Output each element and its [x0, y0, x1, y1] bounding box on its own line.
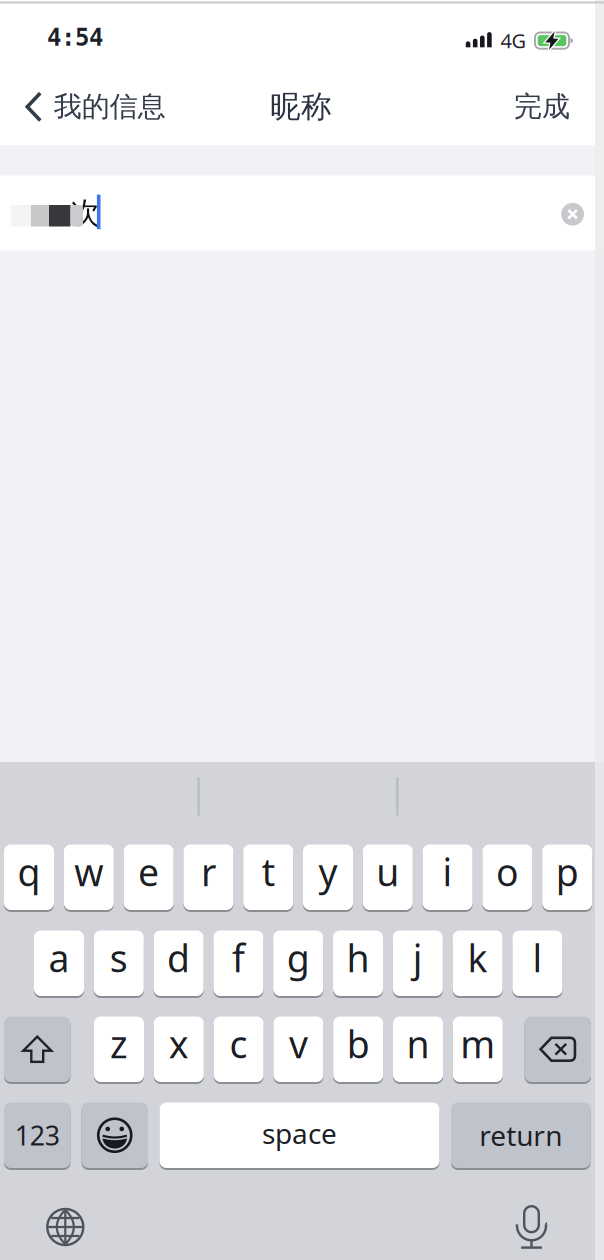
staticText: j	[413, 933, 423, 983]
button[interactable]: p	[542, 843, 592, 911]
staticText: return	[479, 1117, 562, 1154]
staticText: h	[346, 933, 369, 983]
button[interactable]: e	[124, 843, 174, 911]
staticText: o	[496, 847, 519, 897]
button[interactable]: d	[154, 929, 204, 997]
staticText: k	[468, 933, 488, 983]
button[interactable]: o	[482, 843, 532, 911]
staticText: 我的信息	[54, 90, 166, 124]
button[interactable]: Clear text	[561, 203, 584, 226]
button[interactable]: t	[243, 843, 293, 911]
button[interactable]: c	[214, 1015, 264, 1083]
staticText: l	[532, 933, 542, 983]
staticText: z	[110, 1019, 128, 1069]
staticText: n	[406, 1019, 429, 1069]
button[interactable]: q	[4, 843, 54, 911]
staticText: 完成	[514, 90, 570, 124]
button[interactable]: Shift	[4, 1015, 70, 1083]
staticText: q	[17, 847, 40, 897]
staticText: e	[138, 847, 159, 897]
button[interactable]: s	[94, 929, 144, 997]
staticText: a	[48, 933, 69, 983]
button[interactable]: m	[453, 1015, 503, 1083]
staticText: d	[167, 933, 190, 983]
button[interactable]: w	[64, 843, 114, 911]
button[interactable]: Dictation	[509, 1198, 553, 1254]
button[interactable]: z	[94, 1015, 144, 1083]
button[interactable]: x	[154, 1015, 204, 1083]
button[interactable]: 我的信息	[25, 82, 166, 132]
button[interactable]: Delete	[524, 1015, 591, 1083]
button[interactable]: f	[213, 929, 263, 997]
button[interactable]: space	[159, 1101, 439, 1169]
staticText: v	[289, 1019, 308, 1069]
staticText: 4:54	[47, 23, 103, 51]
staticText: f	[232, 933, 245, 983]
staticText: w	[74, 847, 103, 897]
button[interactable]: b	[333, 1015, 383, 1083]
staticText: t	[262, 847, 275, 897]
staticText: b	[347, 1019, 370, 1069]
staticText: u	[376, 847, 399, 897]
staticText: space	[262, 1115, 337, 1152]
staticText: 次	[70, 195, 99, 231]
staticText: p	[556, 847, 579, 897]
staticText: i	[443, 847, 453, 897]
button[interactable]: i	[423, 843, 473, 911]
staticText: s	[110, 933, 128, 983]
button[interactable]: 123	[4, 1101, 70, 1169]
staticText: 昵称	[270, 88, 332, 126]
button[interactable]: n	[393, 1015, 443, 1083]
button[interactable]: k	[453, 929, 503, 997]
staticText: c	[230, 1019, 248, 1069]
button[interactable]: Next keyboard	[41, 1203, 89, 1251]
staticText: x	[169, 1019, 189, 1069]
staticText: g	[287, 933, 310, 983]
staticText: 4G	[500, 27, 526, 54]
staticText: y	[318, 847, 337, 897]
staticText: 123	[15, 1117, 60, 1153]
button[interactable]: j	[393, 929, 443, 997]
button[interactable]: Emoji	[81, 1101, 148, 1169]
button[interactable]: h	[333, 929, 383, 997]
button[interactable]: r	[183, 843, 233, 911]
staticText: m	[460, 1019, 495, 1069]
button[interactable]: y	[303, 843, 353, 911]
button[interactable]: Nickname	[0, 175, 595, 250]
button[interactable]: a	[34, 929, 84, 997]
button[interactable]: u	[363, 843, 413, 911]
staticText: r	[201, 847, 216, 897]
button[interactable]: g	[273, 929, 323, 997]
button[interactable]: return	[451, 1101, 590, 1169]
button[interactable]: v	[273, 1015, 323, 1083]
button[interactable]: 完成	[497, 82, 587, 132]
button[interactable]: l	[512, 929, 562, 997]
